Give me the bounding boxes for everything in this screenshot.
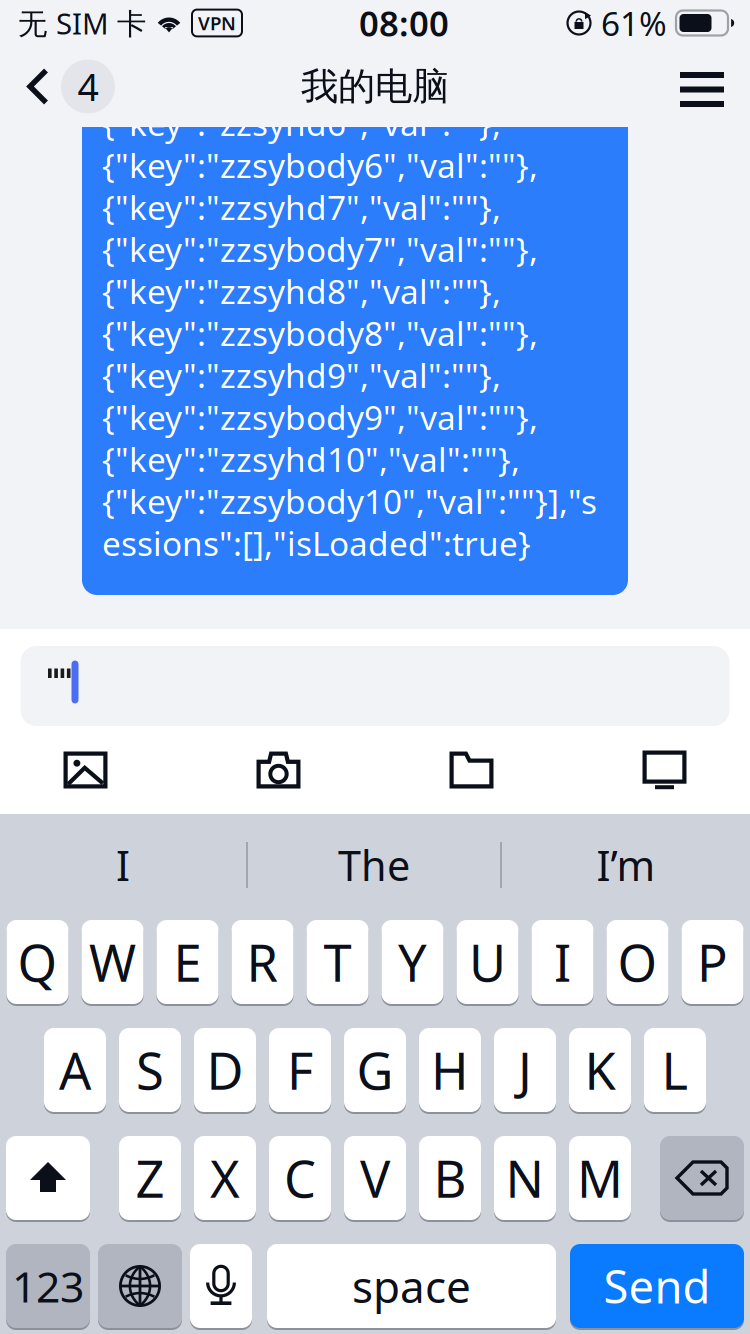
button[interactable]: Camera	[182, 738, 375, 802]
button[interactable]: J	[494, 1027, 556, 1113]
button[interactable]: Z	[119, 1135, 181, 1221]
staticText: V	[360, 1144, 390, 1212]
button[interactable]: H	[419, 1027, 481, 1113]
staticText: {"key":"zzsyhd9","val":""},	[102, 353, 501, 397]
button[interactable]: B	[419, 1135, 481, 1221]
button[interactable]: R	[231, 919, 293, 1005]
button[interactable]: Dictate	[190, 1243, 252, 1329]
staticText: G	[356, 1036, 393, 1104]
button[interactable]: Shift	[6, 1135, 90, 1221]
staticText: I’m	[596, 838, 655, 892]
staticText: B	[433, 1144, 466, 1212]
button[interactable]: Display	[568, 738, 750, 802]
staticText: {"key":"zzsyhd7","val":""},	[102, 185, 501, 229]
staticText: U	[469, 928, 506, 996]
staticText: 123	[12, 1258, 84, 1314]
button[interactable]: S	[119, 1027, 181, 1113]
button[interactable]: Send	[570, 1243, 744, 1329]
button[interactable]: T	[306, 919, 368, 1005]
staticText: {"key":"zzsybody9","val":""},	[102, 395, 538, 439]
staticText: 4	[77, 62, 98, 111]
button[interactable]: Photo library	[0, 738, 182, 802]
button[interactable]: Message input	[20, 646, 729, 726]
staticText: space	[352, 1257, 471, 1315]
staticText: J	[518, 1036, 532, 1104]
button[interactable]: W	[81, 919, 143, 1005]
staticText: essions":[],"isLoaded":true}	[102, 521, 531, 565]
staticText: H	[431, 1036, 469, 1104]
staticText: R	[246, 928, 278, 996]
staticText: {"key":"zzsybody7","val":""},	[102, 227, 538, 271]
button[interactable]: G	[344, 1027, 406, 1113]
staticText: 08:00	[359, 0, 449, 46]
button[interactable]: 123	[6, 1243, 90, 1329]
staticText: 无 SIM 卡	[18, 3, 146, 42]
staticText: The	[338, 838, 410, 892]
staticText: A	[59, 1036, 91, 1104]
staticText: Send	[603, 1256, 710, 1316]
button[interactable]: M	[569, 1135, 631, 1221]
staticText: {"key":"zzsyhd6","val":""},	[102, 101, 501, 145]
button[interactable]: Delete	[660, 1135, 744, 1221]
staticText: P	[697, 928, 728, 996]
button[interactable]: E	[156, 919, 218, 1005]
button[interactable]: P	[681, 919, 743, 1005]
button[interactable]: Y	[381, 919, 443, 1005]
staticText: C	[284, 1144, 316, 1212]
button[interactable]: K	[569, 1027, 631, 1113]
button[interactable]: O	[606, 919, 668, 1005]
staticText: K	[584, 1036, 615, 1104]
button[interactable]: V	[344, 1135, 406, 1221]
staticText: D	[206, 1036, 243, 1104]
staticText: {"key":"zzsybody8","val":""},	[102, 311, 538, 355]
button[interactable]: U	[456, 919, 518, 1005]
staticText: L	[661, 1036, 688, 1104]
staticText: I	[116, 838, 130, 892]
staticText: X	[210, 1144, 240, 1212]
button[interactable]: Menu	[665, 46, 750, 127]
button[interactable]: F	[269, 1027, 331, 1113]
staticText: M	[577, 1144, 623, 1212]
button[interactable]: space	[267, 1243, 556, 1329]
staticText: {"key":"zzsybody6","val":""},	[102, 143, 538, 187]
button[interactable]: A	[44, 1027, 106, 1113]
staticText: E	[173, 928, 201, 996]
staticText: Z	[135, 1144, 164, 1212]
staticText: T	[323, 928, 351, 996]
staticText: 61%	[601, 1, 667, 45]
button[interactable]: Files	[375, 738, 568, 802]
button[interactable]: N	[494, 1135, 556, 1221]
button[interactable]: Back, 4 unread	[0, 46, 129, 127]
button[interactable]: L	[644, 1027, 706, 1113]
button[interactable]: Q	[6, 919, 68, 1005]
staticText: {"key":"zzsyhd10","val":""},	[102, 437, 520, 481]
staticText: W	[89, 928, 136, 996]
button[interactable]: X	[194, 1135, 256, 1221]
button[interactable]: D	[194, 1027, 256, 1113]
staticText: N	[505, 1144, 544, 1212]
button[interactable]: I	[531, 919, 593, 1005]
staticText: {"key":"zzsyhd8","val":""},	[102, 269, 501, 313]
staticText: {"key":"zzsybody10","val":""}],"s	[102, 479, 597, 523]
staticText: VPN	[198, 11, 236, 35]
staticText: I	[554, 928, 571, 996]
staticText: O	[617, 928, 657, 996]
staticText: 我的电脑	[301, 64, 449, 109]
staticText: S	[136, 1036, 164, 1104]
button[interactable]: C	[269, 1135, 331, 1221]
staticText: Q	[17, 928, 57, 996]
button[interactable]: Switch keyboard	[98, 1243, 182, 1329]
staticText: F	[287, 1036, 313, 1104]
staticText: Y	[398, 928, 427, 996]
